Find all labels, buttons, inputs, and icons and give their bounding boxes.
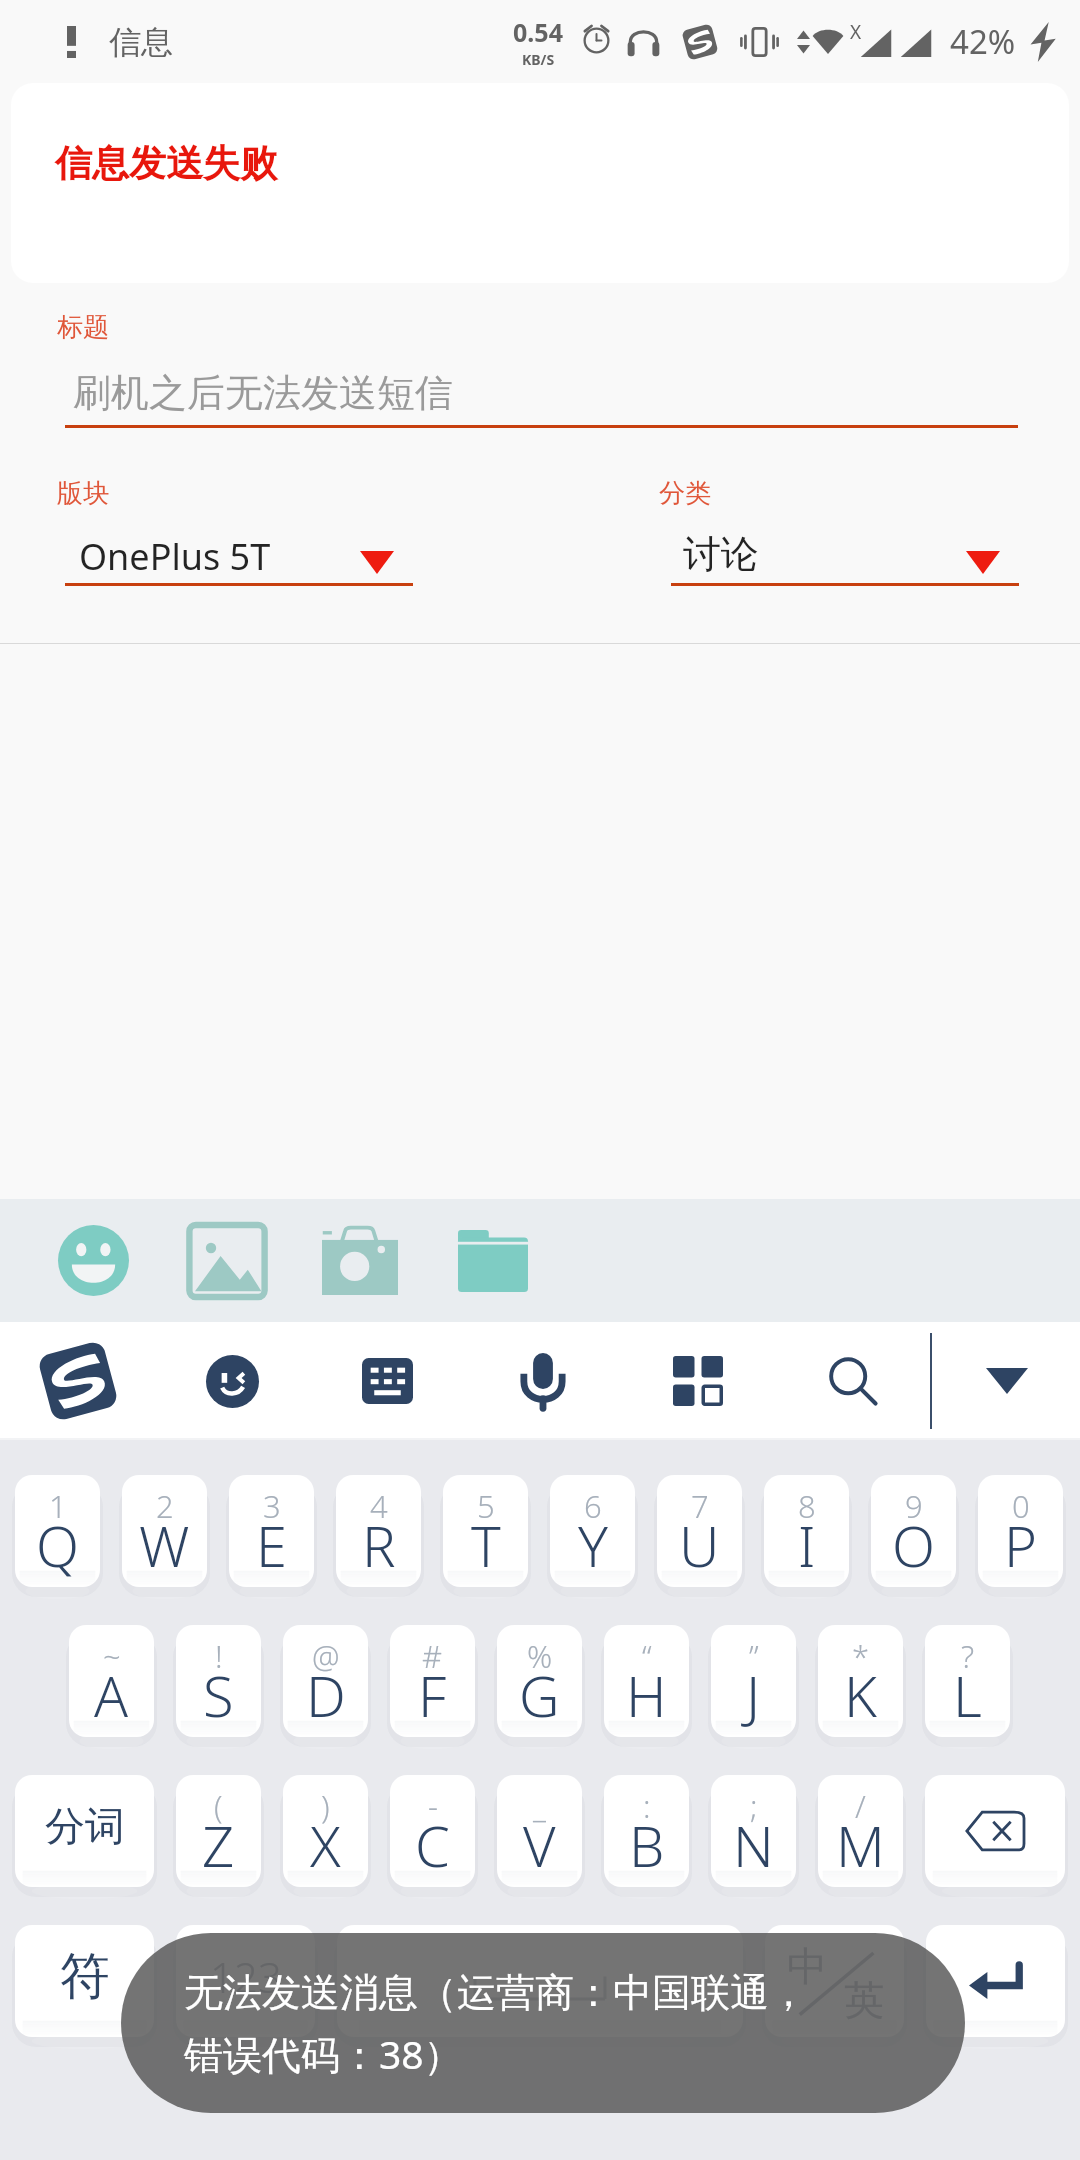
staticText: Q [36,1507,79,1583]
staticText: Y [578,1507,608,1583]
button[interactable]: 2 [122,1475,207,1587]
staticText: N [733,1807,774,1883]
button[interactable]: “ [604,1625,689,1737]
button[interactable]: 0 [978,1475,1063,1587]
staticText: 版块 [57,477,109,510]
staticText: A [94,1657,129,1733]
button[interactable]: 信息发送失败 [11,83,1069,283]
button[interactable]: 分词 [15,1775,154,1887]
staticText: F [418,1657,447,1733]
button[interactable]: Emoji [155,1322,310,1440]
staticText: OnePlus 5T [79,532,271,581]
button[interactable]: ? [925,1625,1010,1737]
button[interactable]: 3 [229,1475,314,1587]
staticText: S [203,1657,234,1733]
staticText: “ [642,1635,652,1677]
staticText: Z [202,1807,235,1883]
staticText: G [519,1657,560,1733]
staticText: I [798,1507,816,1583]
staticText: 刷机之后无法发送短信 [73,369,453,417]
button[interactable]: 符 [15,1925,154,2037]
staticText: % [527,1635,553,1677]
button[interactable]: 5 [443,1475,528,1587]
staticText: @ [312,1635,340,1677]
button[interactable]: Keyboard [310,1322,465,1440]
staticText: X [850,19,862,45]
staticText: 2 [156,1485,174,1527]
button[interactable]: Hide keyboard [951,1322,1063,1440]
button[interactable]: 8 [764,1475,849,1587]
staticText: 1 [49,1485,67,1527]
staticText: 无法发送消息（运营商：中国联通， 错误代码：38） [184,1968,808,2080]
button[interactable]: / [818,1775,903,1887]
staticText: 中 [787,1941,827,1991]
button[interactable]: @ [283,1625,368,1737]
staticText: 8 [798,1485,816,1527]
staticText: ? [961,1635,975,1677]
staticText: D [306,1657,346,1733]
button[interactable]: Image [160,1199,293,1322]
button[interactable]: Voice input [465,1322,620,1440]
button[interactable]: More apps [620,1322,775,1440]
staticText: X [310,1807,341,1883]
staticText: J [746,1657,761,1733]
button[interactable]: : [604,1775,689,1887]
button[interactable]: Files [426,1199,559,1322]
staticText: # [422,1635,443,1677]
button[interactable]: 中 [765,1925,904,2037]
staticText: 讨论 [683,530,759,578]
button[interactable]: Emoji [27,1199,160,1322]
button[interactable]: 7 [657,1475,742,1587]
staticText: T [471,1507,501,1583]
staticText: W [139,1507,190,1583]
staticText: 9 [905,1485,923,1527]
staticText: O [892,1507,935,1583]
staticText: 0.54 [513,15,563,49]
staticText: ( [214,1785,223,1827]
button[interactable]: Search [775,1322,930,1440]
button[interactable]: 4 [336,1475,421,1587]
button[interactable]: 9 [871,1475,956,1587]
button[interactable] [926,1925,1065,2037]
staticText: B [629,1807,665,1883]
staticText: ” [749,1635,759,1677]
button[interactable]: _ [497,1775,582,1887]
staticText: 5 [477,1485,495,1527]
staticText: 英 [844,1975,884,2025]
button[interactable]: ; [711,1775,796,1887]
staticText: - [428,1785,438,1827]
staticText: 信息 [109,22,173,62]
staticText: 4 [370,1485,388,1527]
staticText: 标题 [57,311,109,344]
staticText: 7 [691,1485,709,1527]
staticText: ) [321,1785,330,1827]
button[interactable]: 1 [15,1475,100,1587]
button[interactable]: % [497,1625,582,1737]
button[interactable]: # [390,1625,475,1737]
staticText: KB/S [522,50,555,69]
button[interactable]: ! [176,1625,261,1737]
staticText: 3 [263,1485,281,1527]
button[interactable]: ” [711,1625,796,1737]
button[interactable]: ( [176,1775,261,1887]
button[interactable] [925,1775,1065,1887]
staticText: P [1004,1507,1037,1583]
button[interactable]: Sogou input [0,1322,155,1440]
staticText: M [836,1807,885,1883]
staticText: H [626,1657,667,1733]
staticText: 0 [1012,1485,1030,1527]
button[interactable]: 6 [550,1475,635,1587]
button[interactable]: * [818,1625,903,1737]
staticText: _ [533,1785,546,1827]
button[interactable]: ~ [69,1625,154,1737]
staticText: 6 [584,1485,602,1527]
staticText: ! [215,1635,223,1677]
button[interactable] [337,1925,743,2037]
button[interactable]: - [390,1775,475,1887]
staticText: 分类 [659,477,711,510]
staticText: * [852,1635,870,1677]
button[interactable]: 123 [176,1925,315,2037]
button[interactable]: Camera [293,1199,426,1322]
staticText: 42% [950,19,1016,64]
button[interactable]: ) [283,1775,368,1887]
